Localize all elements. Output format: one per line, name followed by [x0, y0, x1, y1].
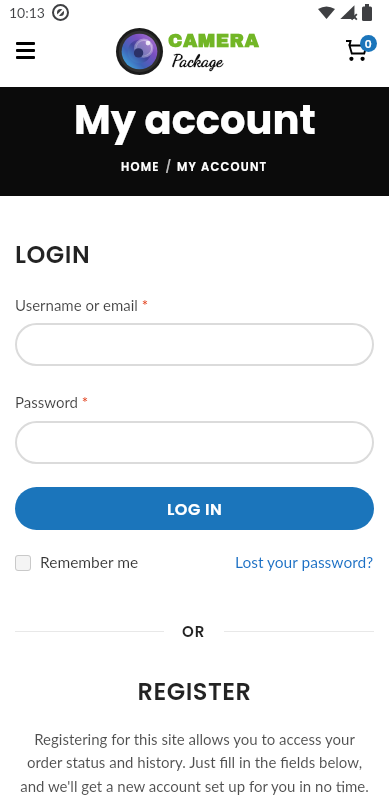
- staticText: Package: [172, 49, 223, 71]
- button[interactable]: Lost your password?: [235, 553, 374, 572]
- staticText: LOG IN: [167, 498, 223, 520]
- staticText: CAMERA: [168, 31, 260, 51]
- staticText: REGISTER: [15, 675, 374, 709]
- staticText: My account: [74, 92, 316, 148]
- staticText: Registering for this site allows you to …: [15, 730, 374, 796]
- staticText: Password *: [15, 393, 89, 411]
- button[interactable]: 0: [345, 35, 377, 63]
- staticText: Remember me: [40, 553, 139, 572]
- staticText: LOGIN: [15, 238, 91, 272]
- button[interactable]: [15, 323, 374, 366]
- staticText: 10:13: [9, 4, 45, 21]
- button[interactable]: [16, 42, 35, 59]
- staticText: MY ACCOUNT: [177, 159, 268, 175]
- staticText: 0: [365, 37, 372, 50]
- staticText: /: [160, 159, 177, 175]
- button[interactable]: [15, 421, 374, 464]
- staticText: Username or email *: [15, 296, 149, 314]
- button[interactable]: Remember me: [15, 553, 139, 572]
- button[interactable]: CAMERA: [116, 28, 260, 75]
- button[interactable]: HOME: [121, 159, 160, 175]
- button[interactable]: LOG IN: [15, 487, 374, 530]
- staticText: OR: [182, 621, 206, 642]
